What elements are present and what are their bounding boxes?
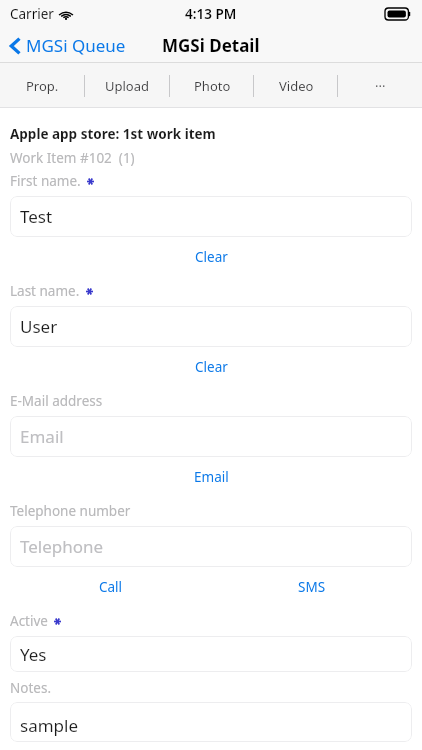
- staticText: Telephone number: [10, 502, 131, 520]
- staticText: User: [20, 315, 58, 338]
- button[interactable]: Email: [180, 465, 243, 489]
- staticText: Clear: [195, 358, 228, 376]
- button[interactable]: User: [10, 306, 412, 347]
- staticText: Upload: [105, 77, 150, 95]
- staticText: Apple app store: 1st work item: [10, 125, 216, 143]
- button[interactable]: Telephone: [10, 526, 412, 567]
- staticText: Photo: [194, 77, 231, 95]
- button[interactable]: Video: [254, 63, 338, 108]
- button[interactable]: ...: [338, 63, 422, 108]
- button[interactable]: Email: [10, 416, 412, 457]
- staticText: Test: [20, 205, 53, 228]
- staticText: SMS: [298, 578, 326, 596]
- button[interactable]: sample: [10, 702, 412, 742]
- staticText: Clear: [195, 248, 228, 266]
- button[interactable]: Clear: [181, 245, 242, 269]
- staticText: ...: [375, 73, 386, 91]
- button[interactable]: Clear: [181, 355, 242, 379]
- staticText: Work Item #102 (1): [10, 149, 135, 167]
- button[interactable]: Upload: [85, 63, 170, 108]
- staticText: 4:13 PM: [185, 5, 237, 23]
- button[interactable]: MGSi Queue: [0, 30, 134, 61]
- staticText: First name.: [10, 172, 81, 190]
- button[interactable]: Photo: [170, 63, 254, 108]
- staticText: E-Mail address: [10, 392, 103, 410]
- staticText: Email: [194, 468, 229, 486]
- button[interactable]: Call: [85, 575, 137, 599]
- staticText: Last name.: [10, 282, 80, 300]
- staticText: MGSi Detail: [162, 34, 260, 57]
- staticText: Carrier: [10, 5, 54, 23]
- staticText: Yes: [20, 643, 47, 666]
- staticText: Notes.: [10, 679, 51, 697]
- staticText: Email: [20, 425, 64, 448]
- staticText: Prop.: [26, 77, 59, 95]
- staticText: Video: [279, 77, 314, 95]
- button[interactable]: Prop.: [0, 63, 85, 108]
- button[interactable]: Test: [10, 196, 412, 237]
- button[interactable]: Yes: [10, 636, 412, 672]
- staticText: Telephone: [20, 535, 104, 558]
- staticText: sample: [20, 714, 79, 737]
- staticText: Call: [99, 578, 123, 596]
- staticText: Active: [10, 612, 48, 630]
- button[interactable]: SMS: [284, 575, 340, 599]
- staticText: MGSi Queue: [26, 34, 126, 57]
